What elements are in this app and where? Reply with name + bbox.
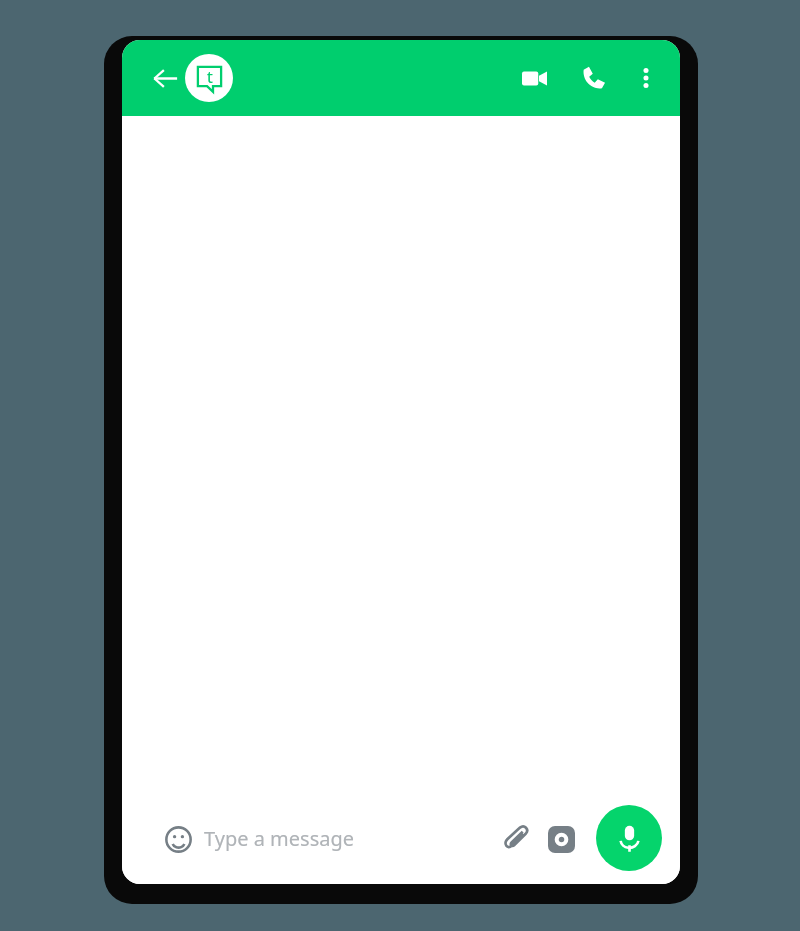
button[interactable]: More options <box>626 58 666 98</box>
button[interactable]: Back <box>144 57 186 99</box>
button[interactable]: Insert emoji <box>149 810 590 867</box>
button[interactable]: Insert emoji <box>159 820 197 858</box>
staticText: t <box>207 66 213 88</box>
button[interactable]: Attach file <box>495 818 537 860</box>
button[interactable]: Call <box>572 56 616 100</box>
staticText: Type a message <box>204 825 355 852</box>
button[interactable]: Video call <box>512 56 556 100</box>
button[interactable]: Record voice message <box>596 805 662 871</box>
button[interactable]: Camera <box>540 818 582 860</box>
button[interactable]: Contact avatar <box>185 54 233 102</box>
